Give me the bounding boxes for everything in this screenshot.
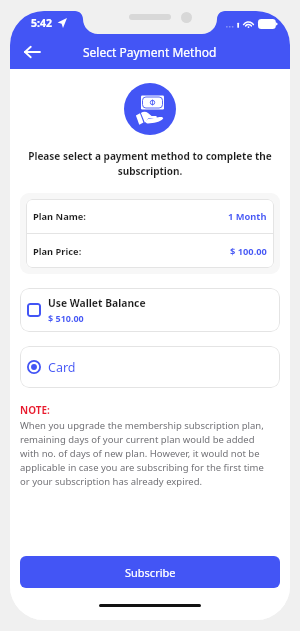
button[interactable]: Card [20,346,280,388]
staticText: 1 Month [228,210,267,223]
button[interactable]: Back [18,38,46,66]
button[interactable]: Subscribe [20,556,280,588]
staticText: Subscribe [125,565,176,580]
staticText: Plan Name: [33,210,86,223]
staticText: Select Payment Method [83,44,217,60]
staticText: Use Wallet Balance [48,296,146,310]
staticText: When you upgrade the membership subscrip… [20,419,271,488]
staticText: 5:42 [31,16,52,30]
staticText: Please select a payment method to comple… [28,149,272,178]
staticText: NOTE: [20,403,50,417]
button[interactable]: Use Wallet Balance [20,288,280,332]
staticText: Card [48,359,76,376]
staticText: Plan Price: [33,245,82,258]
staticText: $ 510.00 [48,312,84,324]
staticText: $ 100.00 [230,245,267,258]
